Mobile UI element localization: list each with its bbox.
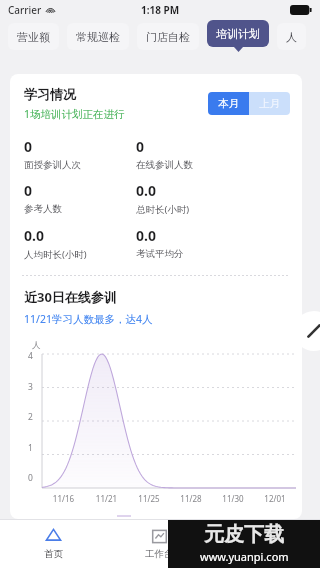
- staticText: 元皮下载: [204, 522, 284, 547]
- staticText: 首页: [44, 548, 63, 560]
- staticText: 0: [24, 181, 33, 200]
- staticText: www.yuanpi.com: [200, 549, 289, 564]
- staticText: 11/21学习人数最多，达4人: [24, 312, 153, 326]
- staticText: 培训计划: [216, 27, 260, 41]
- button[interactable]: 工作台: [106, 520, 213, 568]
- button[interactable]: 门店自检: [137, 23, 199, 50]
- staticText: 0.0: [136, 226, 156, 245]
- button[interactable]: 营业额: [8, 23, 59, 50]
- staticText: 2: [28, 411, 33, 423]
- button[interactable]: 常规巡检: [67, 23, 129, 50]
- button[interactable]: 培训计划: [207, 20, 269, 47]
- staticText: 上月: [259, 97, 280, 110]
- staticText: 3: [28, 381, 33, 393]
- staticText: 11/30: [212, 493, 254, 504]
- staticText: 营业额: [17, 30, 50, 44]
- staticText: 总时长(小时): [136, 203, 190, 216]
- button[interactable]: 首页: [0, 520, 106, 568]
- staticText: 11/28: [170, 493, 212, 504]
- staticText: 面授参训人次: [24, 159, 81, 171]
- staticText: 常规巡检: [76, 30, 120, 44]
- staticText: 近30日在线参训: [24, 288, 117, 306]
- staticText: 参考人数: [24, 203, 62, 215]
- button[interactable]: 本月: [208, 92, 249, 115]
- staticText: 本月: [218, 97, 239, 110]
- staticText: 0.0: [24, 226, 44, 245]
- button[interactable]: 人: [277, 23, 306, 50]
- staticText: 1: [28, 442, 33, 454]
- staticText: 1:18 PM: [141, 3, 180, 17]
- staticText: 0: [136, 137, 145, 156]
- button[interactable]: 我的: [213, 520, 320, 568]
- staticText: 人均时长(小时): [24, 248, 87, 261]
- staticText: Carrier: [8, 3, 42, 17]
- staticText: 工作台: [145, 548, 174, 560]
- staticText: 0.0: [136, 181, 156, 200]
- staticText: 1场培训计划正在进行: [24, 107, 125, 121]
- staticText: 11/16: [42, 493, 85, 504]
- staticText: 4: [28, 350, 33, 362]
- staticText: 人: [286, 30, 297, 44]
- staticText: 人: [32, 340, 41, 351]
- staticText: 12/01: [254, 493, 296, 504]
- button[interactable]: 上月: [249, 92, 290, 115]
- staticText: 0: [28, 472, 33, 484]
- staticText: 门店自检: [146, 30, 190, 44]
- staticText: 考试平均分: [136, 248, 184, 260]
- button[interactable]: Edit: [294, 311, 320, 351]
- staticText: 11/25: [128, 493, 170, 504]
- staticText: 我的: [257, 548, 276, 560]
- staticText: 0: [24, 137, 33, 156]
- staticText: 学习情况: [24, 86, 76, 102]
- staticText: 在线参训人数: [136, 159, 193, 171]
- staticText: 11/21: [85, 493, 128, 504]
